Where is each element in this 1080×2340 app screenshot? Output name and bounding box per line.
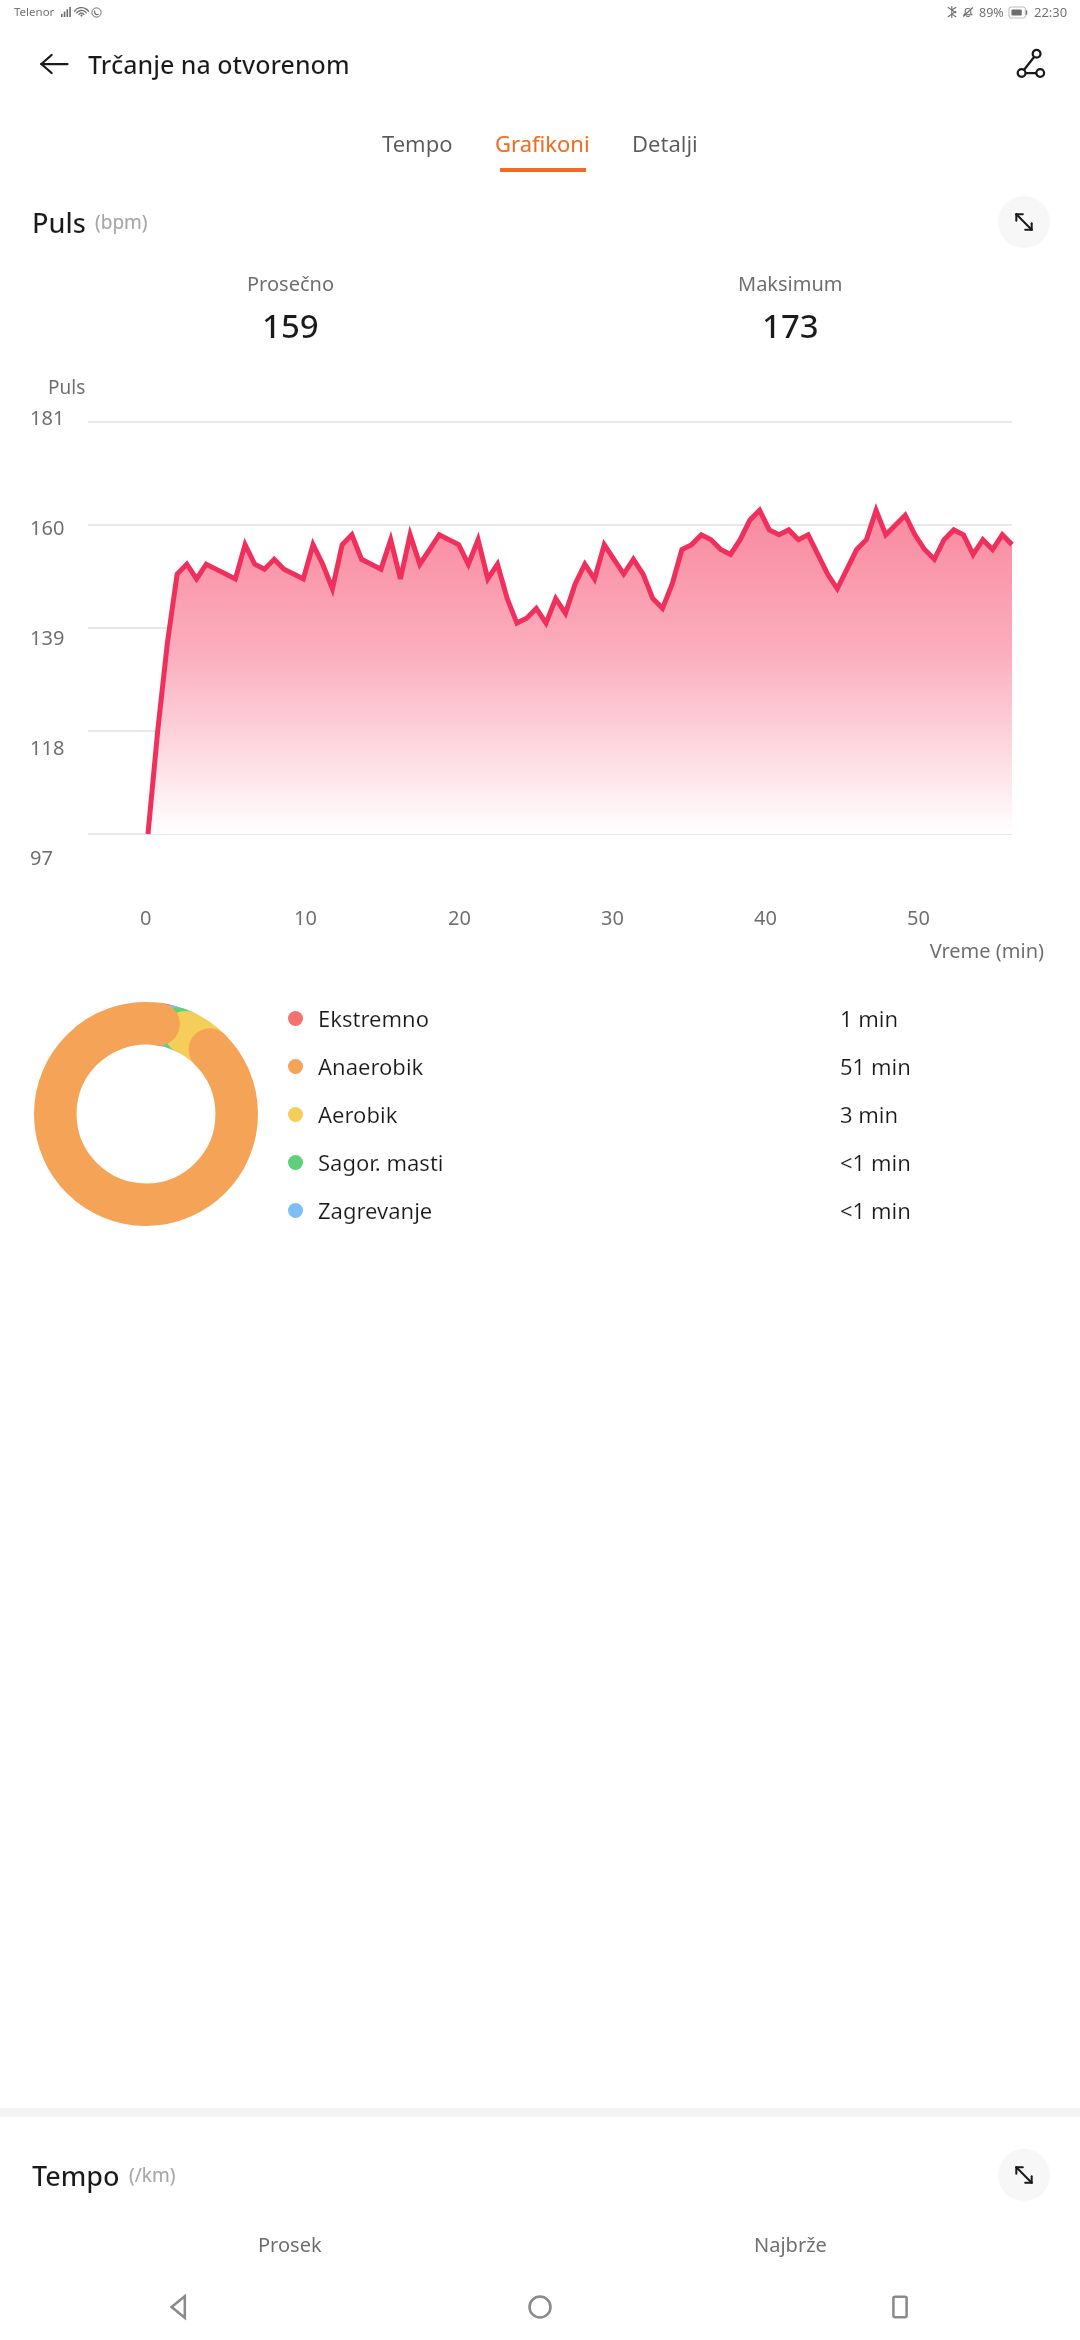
staticText: <1 min [840, 1195, 911, 1225]
button[interactable]: Expand chart [998, 2149, 1050, 2201]
staticText: 159 [262, 303, 319, 348]
staticText: Tempo [32, 2157, 120, 2194]
staticText: Najbrže [754, 2231, 827, 2258]
staticText: Detalji [632, 128, 698, 158]
staticText: 40 [754, 904, 777, 931]
button[interactable]: Anaerobik [288, 1042, 1040, 1090]
staticText: Puls [32, 204, 86, 241]
button[interactable]: Expand chart [998, 196, 1050, 248]
button[interactable]: Ekstremno [288, 994, 1040, 1042]
staticText: Prosečno [247, 270, 334, 297]
button[interactable]: Tempo [372, 122, 463, 178]
staticText: (/km) [129, 2162, 176, 2188]
button[interactable]: Share [1006, 40, 1054, 88]
staticText: 118 [30, 734, 65, 761]
staticText: Grafikoni [495, 128, 590, 158]
staticText: 50 [907, 904, 930, 931]
staticText: 160 [30, 514, 65, 541]
staticText: Vreme (min) [0, 937, 1044, 964]
staticText: 139 [30, 624, 65, 651]
button[interactable]: Back [30, 40, 78, 88]
staticText: 1 min [840, 1003, 899, 1033]
staticText: 51 min [840, 1051, 911, 1081]
staticText: Sagor. masti [318, 1147, 444, 1177]
button[interactable]: Detalji [622, 122, 708, 178]
staticText: Zagrevanje [318, 1195, 433, 1225]
staticText: 97 [30, 844, 53, 871]
staticText: Puls [48, 374, 86, 400]
staticText: 20 [448, 904, 471, 931]
button[interactable]: Back [0, 2274, 360, 2340]
staticText: Tempo [382, 128, 453, 158]
staticText: 181 [30, 404, 65, 431]
staticText: 89% [979, 4, 1004, 21]
staticText: Telenor [14, 4, 55, 20]
staticText: 10 [294, 904, 317, 931]
button[interactable]: Grafikoni [485, 122, 600, 178]
staticText: Maksimum [738, 270, 843, 297]
staticText: Prosek [258, 2231, 322, 2258]
staticText: Aerobik [318, 1099, 398, 1129]
staticText: Ekstremno [318, 1003, 429, 1033]
staticText: Trčanje na otvorenom [88, 47, 350, 81]
staticText: 3 min [840, 1099, 899, 1129]
button[interactable]: Aerobik [288, 1090, 1040, 1138]
staticText: Anaerobik [318, 1051, 424, 1081]
staticText: 0 [140, 904, 152, 931]
staticText: 173 [762, 303, 819, 348]
staticText: 30 [601, 904, 624, 931]
staticText: 22:30 [1034, 3, 1068, 21]
button[interactable]: Zagrevanje [288, 1186, 1040, 1234]
button[interactable]: Sagor. masti [288, 1138, 1040, 1186]
staticText: <1 min [840, 1147, 911, 1177]
staticText: (bpm) [95, 209, 148, 235]
button[interactable]: Recents [720, 2274, 1080, 2340]
button[interactable]: Home [360, 2274, 720, 2340]
